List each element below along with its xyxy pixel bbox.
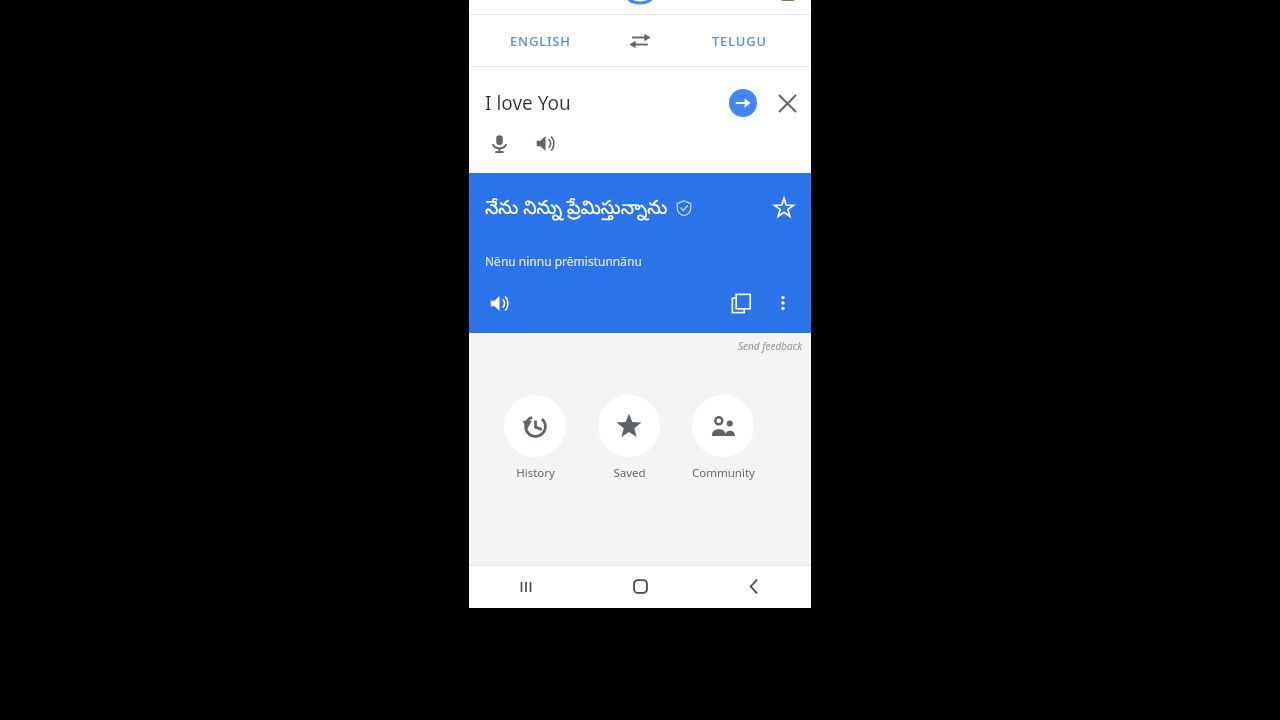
button[interactable]: Account	[777, 0, 799, 1]
button[interactable]: Clear	[767, 81, 807, 125]
staticText: History	[516, 465, 555, 481]
button[interactable]: Listen to translation	[477, 281, 521, 325]
button[interactable]: Send feedback	[738, 339, 803, 353]
button[interactable]: Translate	[719, 79, 767, 127]
button[interactable]: Swap languages	[612, 15, 668, 67]
button[interactable]: Back	[697, 565, 811, 608]
button[interactable]: Copy	[719, 281, 763, 325]
staticText: Send feedback	[738, 339, 803, 353]
staticText: Nēnu ninnu prēmistunnānu	[485, 253, 642, 269]
button[interactable]: Community	[691, 395, 755, 481]
staticText: I love You	[485, 90, 571, 116]
button[interactable]: నేను నిన్ను ప్రేమిస్తున్నాను	[469, 173, 811, 333]
staticText: నేను నిన్ను ప్రేమిస్తున్నాను	[485, 194, 668, 223]
staticText: ENGLISH	[510, 32, 571, 50]
button[interactable]: TELUGU	[668, 15, 811, 67]
button[interactable]: Recent apps	[469, 565, 583, 608]
button[interactable]: History	[503, 395, 567, 481]
staticText: Saved	[613, 465, 646, 481]
button[interactable]: I love You	[485, 75, 719, 131]
button[interactable]: More options	[763, 283, 803, 323]
staticText: TELUGU	[712, 32, 767, 50]
button[interactable]: Saved	[597, 395, 661, 481]
button[interactable]: Home	[583, 565, 697, 608]
button[interactable]: ENGLISH	[469, 15, 612, 67]
button[interactable]: Listen	[523, 121, 567, 165]
button[interactable]: Save translation	[765, 189, 803, 227]
staticText: Community	[692, 465, 755, 481]
button[interactable]: Voice input	[477, 121, 521, 165]
